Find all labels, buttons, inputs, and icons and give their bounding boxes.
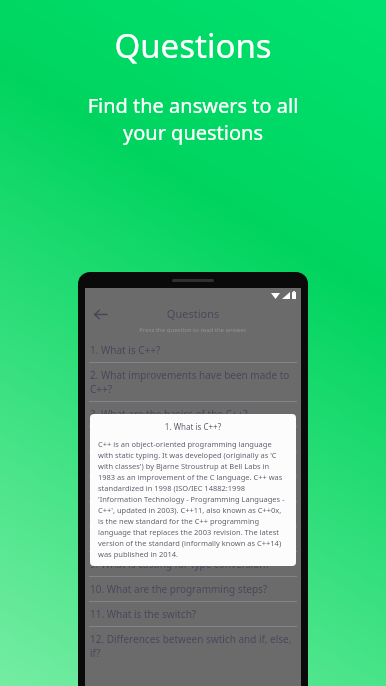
staticText: 6. What is an array? bbox=[90, 482, 296, 496]
button[interactable]: 10. What are the programming steps? bbox=[85, 577, 301, 602]
button[interactable]: 12. Differences between swtich and if, e… bbox=[85, 627, 301, 665]
button[interactable]: 1. What is C++? bbox=[90, 414, 296, 566]
staticText: 3. What are the basics of the C++? bbox=[90, 407, 296, 421]
staticText: Find the answers to all your questions bbox=[18, 92, 368, 146]
button[interactable]: 6. What is an array? bbox=[85, 477, 301, 502]
staticText: 10. What are the programming steps? bbox=[90, 582, 296, 596]
staticText: 8. Why is syntax very important? bbox=[90, 532, 296, 546]
staticText: 9. What is casting for type conversion? bbox=[90, 557, 296, 571]
button[interactable]: 1. What is C++? bbox=[85, 338, 301, 363]
staticText: 1. What is C++? bbox=[98, 421, 288, 432]
staticText: 11. What is the switch? bbox=[90, 607, 296, 621]
staticText: 4. What are the data types? bbox=[90, 432, 296, 446]
staticText: Questions bbox=[0, 23, 386, 68]
staticText: C++ is an object-oriented programming la… bbox=[98, 439, 288, 559]
button[interactable]: 3. What are the basics of the C++? bbox=[85, 402, 301, 427]
staticText: 5. What are the operators? bbox=[90, 457, 296, 471]
staticText: Press the question to read the answer. bbox=[85, 326, 301, 334]
button[interactable]: 8. Why is syntax very important? bbox=[85, 527, 301, 552]
button[interactable]: 4. What are the data types? bbox=[85, 427, 301, 452]
button[interactable]: 9. What is casting for type conversion? bbox=[85, 552, 301, 577]
button[interactable]: 2. What improvements have been made to C… bbox=[85, 363, 301, 402]
staticText: 12. Differences between swtich and if, e… bbox=[90, 632, 296, 660]
button[interactable]: 11. What is the switch? bbox=[85, 602, 301, 627]
staticText: 2. What improvements have been made to C… bbox=[90, 368, 296, 396]
button[interactable]: 7. What are the functions? bbox=[85, 502, 301, 527]
staticText: 7. What are the functions? bbox=[90, 507, 296, 521]
staticText: 1. What is C++? bbox=[90, 343, 296, 357]
button[interactable]: 5. What are the operators? bbox=[85, 452, 301, 477]
button[interactable]: Back bbox=[89, 303, 111, 325]
staticText: Questions bbox=[85, 306, 301, 321]
